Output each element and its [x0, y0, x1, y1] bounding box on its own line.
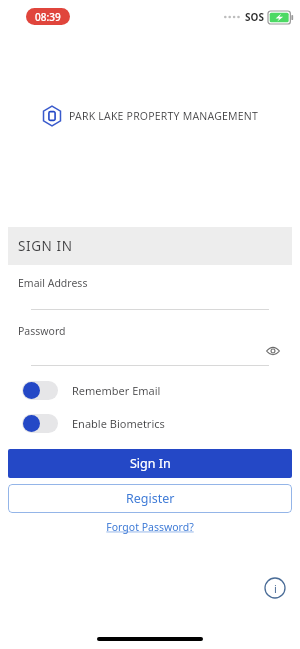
button[interactable]: Information — [262, 575, 288, 601]
button[interactable]: Sign In — [8, 449, 292, 478]
button[interactable]: Enable Biometrics — [18, 414, 282, 433]
staticText: Password — [18, 324, 66, 338]
staticText: Email Address — [18, 276, 88, 290]
staticText: PARK LAKE PROPERTY MANAGEMENT — [69, 109, 259, 123]
staticText: SOS — [245, 10, 264, 24]
button[interactable]: Show password — [264, 342, 282, 360]
staticText: Register — [126, 490, 175, 507]
button[interactable]: Remember Email — [18, 381, 282, 400]
staticText: Remember Email — [72, 383, 161, 398]
staticText: SIGN IN — [18, 237, 73, 255]
staticText: Sign In — [130, 455, 171, 472]
button[interactable]: Forgot Password? — [100, 518, 200, 536]
staticText: 08:39 — [35, 10, 61, 24]
staticText: Enable Biometrics — [72, 416, 165, 431]
staticText: i — [274, 581, 277, 596]
staticText: Forgot Password? — [106, 520, 194, 534]
button[interactable]: Register — [8, 484, 292, 513]
